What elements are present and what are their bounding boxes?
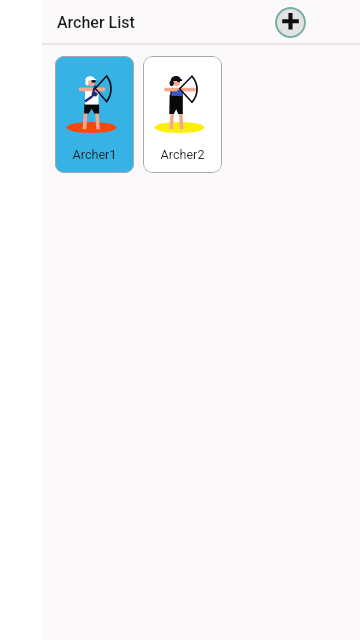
button[interactable]: Archer2: [143, 56, 222, 173]
staticText: Archer1: [55, 147, 134, 162]
button[interactable]: Add archer: [275, 7, 306, 38]
staticText: Archer List: [57, 13, 135, 32]
button[interactable]: Archer1: [55, 56, 134, 173]
staticText: Archer2: [143, 147, 222, 162]
